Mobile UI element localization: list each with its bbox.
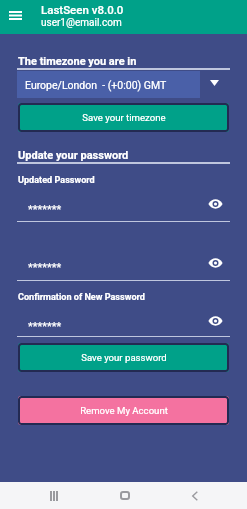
staticText: Update your password	[18, 149, 129, 162]
staticText: Save your password	[81, 352, 167, 363]
button[interactable]: Show password	[207, 255, 223, 271]
staticText: user1@email.com	[41, 17, 122, 29]
button[interactable]: Recents	[34, 482, 74, 509]
staticText: Remove My Account	[80, 405, 168, 416]
button[interactable]: Europe/London - (+0:00) GMT	[17, 71, 200, 98]
button[interactable]: Save your password	[18, 343, 229, 372]
staticText: *******	[28, 320, 62, 333]
button[interactable]: Show password	[207, 196, 223, 212]
staticText: The timezone you are in	[18, 55, 137, 68]
button[interactable]: Open navigation menu	[9, 11, 22, 20]
staticText: *******	[28, 203, 62, 216]
button[interactable]: Show password	[207, 313, 223, 329]
staticText: LastSeen v8.0.0	[41, 3, 124, 16]
button[interactable]: Save your timezone	[18, 103, 229, 132]
button[interactable]: Remove My Account	[18, 396, 229, 425]
staticText: *******	[28, 261, 62, 274]
button[interactable]: Back	[174, 482, 214, 509]
button[interactable]: Home	[104, 482, 144, 509]
staticText: Save your timezone	[82, 112, 166, 123]
staticText: Updated Password	[18, 175, 95, 186]
staticText: Confirmation of New Password	[18, 292, 145, 303]
staticText: Europe/London - (+0:00) GMT	[25, 79, 167, 91]
